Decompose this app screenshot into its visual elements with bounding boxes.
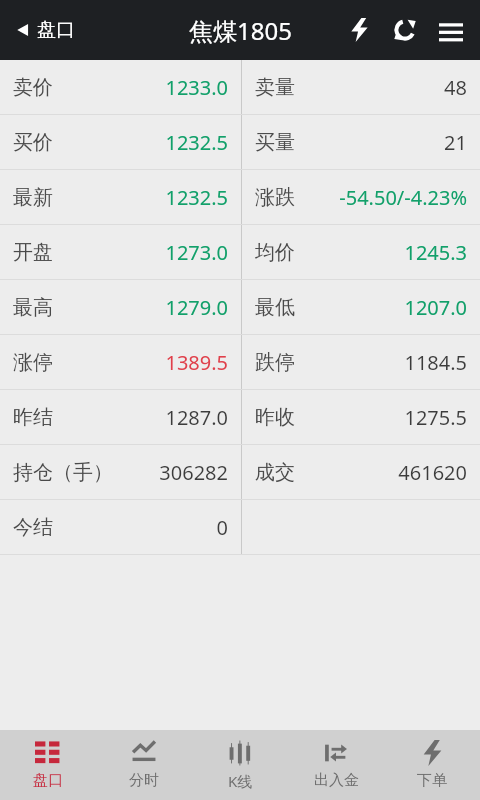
staticText: 461620 <box>398 459 467 486</box>
staticText: 均价 <box>255 240 295 265</box>
staticText: 0 <box>216 514 228 541</box>
button[interactable]: 出入金 <box>288 730 384 800</box>
button[interactable]: 下单 <box>384 730 480 800</box>
staticText: -54.50/-4.23% <box>339 184 467 211</box>
button[interactable]: 昨结 <box>0 390 241 444</box>
staticText: 出入金 <box>314 771 359 790</box>
staticText: 开盘 <box>13 240 53 265</box>
button[interactable]: Menu <box>428 7 474 53</box>
button[interactable]: 开盘 <box>0 225 241 279</box>
staticText: 卖量 <box>255 75 295 100</box>
button[interactable]: 卖量 <box>242 60 480 114</box>
staticText: 最高 <box>13 295 53 320</box>
button[interactable]: 最高 <box>0 280 241 334</box>
staticText: K线 <box>228 771 253 791</box>
button[interactable]: 最新 <box>0 170 241 224</box>
button[interactable]: 涨跌 <box>242 170 480 224</box>
staticText: 48 <box>444 74 467 101</box>
button[interactable]: 盘口 <box>14 18 75 42</box>
button[interactable]: 分时 <box>96 730 192 800</box>
staticText: 分时 <box>129 771 159 790</box>
staticText: 1287.0 <box>165 404 228 431</box>
button[interactable]: Quick trade <box>336 7 382 53</box>
staticText: 涨跌 <box>255 185 295 210</box>
staticText: 1275.5 <box>404 404 467 431</box>
staticText: 今结 <box>13 515 53 540</box>
button[interactable]: 今结 <box>0 500 241 554</box>
staticText: 持仓（手） <box>13 460 113 485</box>
staticText: 1279.0 <box>165 294 228 321</box>
staticText: 成交 <box>255 460 295 485</box>
staticText: 昨结 <box>13 405 53 430</box>
staticText: 1233.0 <box>165 74 228 101</box>
button[interactable]: 持仓（手） <box>0 445 241 499</box>
staticText: 1389.5 <box>165 349 228 376</box>
staticText: 盘口 <box>33 771 63 790</box>
staticText: 下单 <box>417 771 447 790</box>
button[interactable]: 买量 <box>242 115 480 169</box>
staticText: 1273.0 <box>165 239 228 266</box>
button[interactable]: 卖价 <box>0 60 241 114</box>
staticText: 1184.5 <box>404 349 467 376</box>
staticText: 1232.5 <box>165 129 228 156</box>
staticText: 涨停 <box>13 350 53 375</box>
staticText: 21 <box>444 129 467 156</box>
staticText: 最新 <box>13 185 53 210</box>
staticText: 卖价 <box>13 75 53 100</box>
staticText: 1207.0 <box>404 294 467 321</box>
staticText: 焦煤1805 <box>189 14 292 47</box>
button[interactable]: 跌停 <box>242 335 480 389</box>
staticText: 1232.5 <box>165 184 228 211</box>
staticText: 1245.3 <box>404 239 467 266</box>
button[interactable]: 涨停 <box>0 335 241 389</box>
button[interactable]: 昨收 <box>242 390 480 444</box>
button[interactable]: 均价 <box>242 225 480 279</box>
staticText: 306282 <box>159 459 228 486</box>
staticText: 跌停 <box>255 350 295 375</box>
button[interactable]: 盘口 <box>0 730 96 800</box>
button[interactable]: K线 <box>192 730 288 800</box>
staticText: 最低 <box>255 295 295 320</box>
button[interactable]: Refresh <box>382 7 428 53</box>
staticText: 买价 <box>13 130 53 155</box>
staticText: 买量 <box>255 130 295 155</box>
staticText: 昨收 <box>255 405 295 430</box>
staticText: 盘口 <box>37 18 75 42</box>
button[interactable]: 最低 <box>242 280 480 334</box>
button[interactable]: 成交 <box>242 445 480 499</box>
button[interactable]: 买价 <box>0 115 241 169</box>
